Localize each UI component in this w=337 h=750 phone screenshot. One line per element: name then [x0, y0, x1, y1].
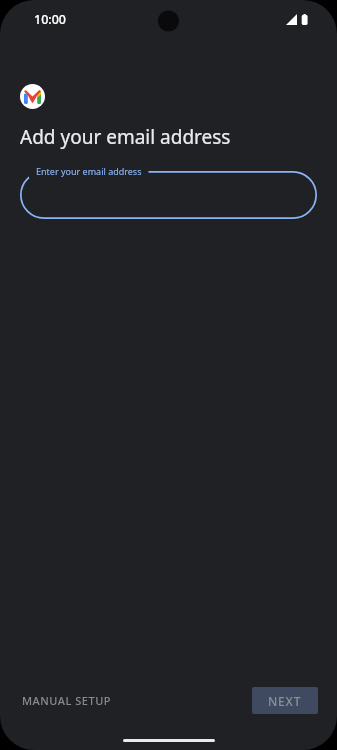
staticText: MANUAL SETUP — [22, 693, 111, 708]
staticText: Enter your email address — [36, 165, 142, 177]
staticText: 10:00 — [34, 11, 67, 28]
button[interactable]: NEXT — [252, 687, 318, 714]
staticText: NEXT — [268, 693, 302, 709]
button[interactable]: Enter your email address — [20, 163, 317, 219]
button[interactable]: MANUAL SETUP — [0, 685, 123, 716]
staticText: Add your email address — [20, 124, 231, 150]
